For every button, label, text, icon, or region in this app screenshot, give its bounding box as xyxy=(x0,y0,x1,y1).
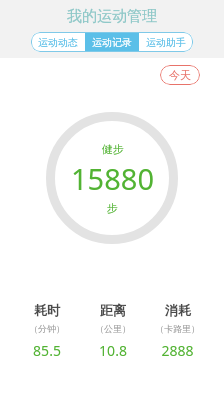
staticText: 消耗 xyxy=(165,302,191,318)
staticText: 10.8 xyxy=(99,341,127,360)
staticText: 今天 xyxy=(169,68,191,82)
staticText: 15880 xyxy=(71,159,154,198)
button[interactable]: 运动动态 xyxy=(31,32,85,52)
staticText: 运动助手 xyxy=(146,36,186,49)
button[interactable]: 消耗 xyxy=(145,302,210,360)
staticText: 运动动态 xyxy=(38,36,78,49)
staticText: 距离 xyxy=(100,302,126,318)
button[interactable]: 距离 xyxy=(80,302,145,360)
staticText: 步 xyxy=(107,201,118,215)
staticText: 耗时 xyxy=(34,302,60,318)
staticText: （卡路里） xyxy=(155,323,200,334)
button[interactable]: 运动记录 xyxy=(85,32,139,52)
staticText: 2888 xyxy=(161,341,194,360)
staticText: 我的运动管理 xyxy=(67,7,157,26)
staticText: 运动记录 xyxy=(92,36,132,49)
button[interactable]: 运动助手 xyxy=(139,32,193,52)
staticText: （分钟） xyxy=(29,323,65,334)
button[interactable]: 耗时 xyxy=(14,302,80,360)
staticText: 85.5 xyxy=(33,341,61,360)
button[interactable]: 今天 xyxy=(160,65,200,85)
staticText: 健步 xyxy=(102,142,124,156)
staticText: （公里） xyxy=(95,323,131,334)
